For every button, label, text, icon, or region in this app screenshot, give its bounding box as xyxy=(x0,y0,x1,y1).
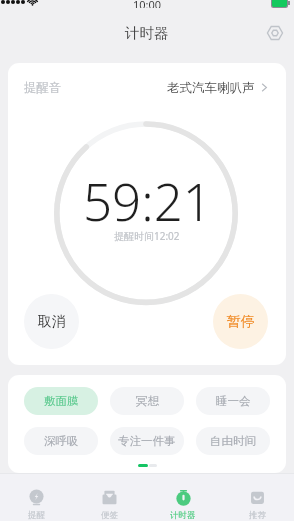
button[interactable]: 深呼吸 xyxy=(24,427,98,455)
staticText: 计时器 xyxy=(170,510,196,521)
staticText: 深呼吸 xyxy=(44,434,79,448)
staticText: 59:21 xyxy=(83,166,212,235)
staticText: 提醒 xyxy=(28,510,45,521)
button[interactable]: 自由时间 xyxy=(196,427,270,455)
staticText: 提醒音 xyxy=(24,80,62,96)
button[interactable]: 便签 xyxy=(73,474,146,521)
staticText: 计时器 xyxy=(125,24,169,42)
button[interactable]: Settings xyxy=(264,22,286,44)
button[interactable]: 提醒音 xyxy=(8,63,286,112)
button[interactable]: 推荐 xyxy=(220,474,294,521)
button[interactable]: 冥想 xyxy=(110,387,184,415)
button[interactable]: 睡一会 xyxy=(196,387,270,415)
button[interactable]: 暂停 xyxy=(213,294,268,349)
button[interactable]: 计时器 xyxy=(146,474,220,521)
staticText: 冥想 xyxy=(136,394,159,408)
staticText: 睡一会 xyxy=(216,394,251,408)
staticText: 专注一件事 xyxy=(118,434,176,448)
staticText: 10:00 xyxy=(133,0,162,8)
button[interactable]: 专注一件事 xyxy=(110,427,184,455)
staticText: 推荐 xyxy=(249,510,266,521)
staticText: 取消 xyxy=(38,313,66,330)
staticText: 便签 xyxy=(101,510,118,521)
staticText: 自由时间 xyxy=(210,434,256,448)
staticText: 敷面膜 xyxy=(44,394,79,408)
staticText: 暂停 xyxy=(227,313,255,330)
button[interactable]: 提醒 xyxy=(0,474,73,521)
button[interactable]: 取消 xyxy=(24,294,79,349)
staticText: 老式汽车喇叭声 xyxy=(167,80,255,96)
button[interactable]: 敷面膜 xyxy=(24,387,98,415)
staticText: 提醒时间12:02 xyxy=(114,229,180,243)
